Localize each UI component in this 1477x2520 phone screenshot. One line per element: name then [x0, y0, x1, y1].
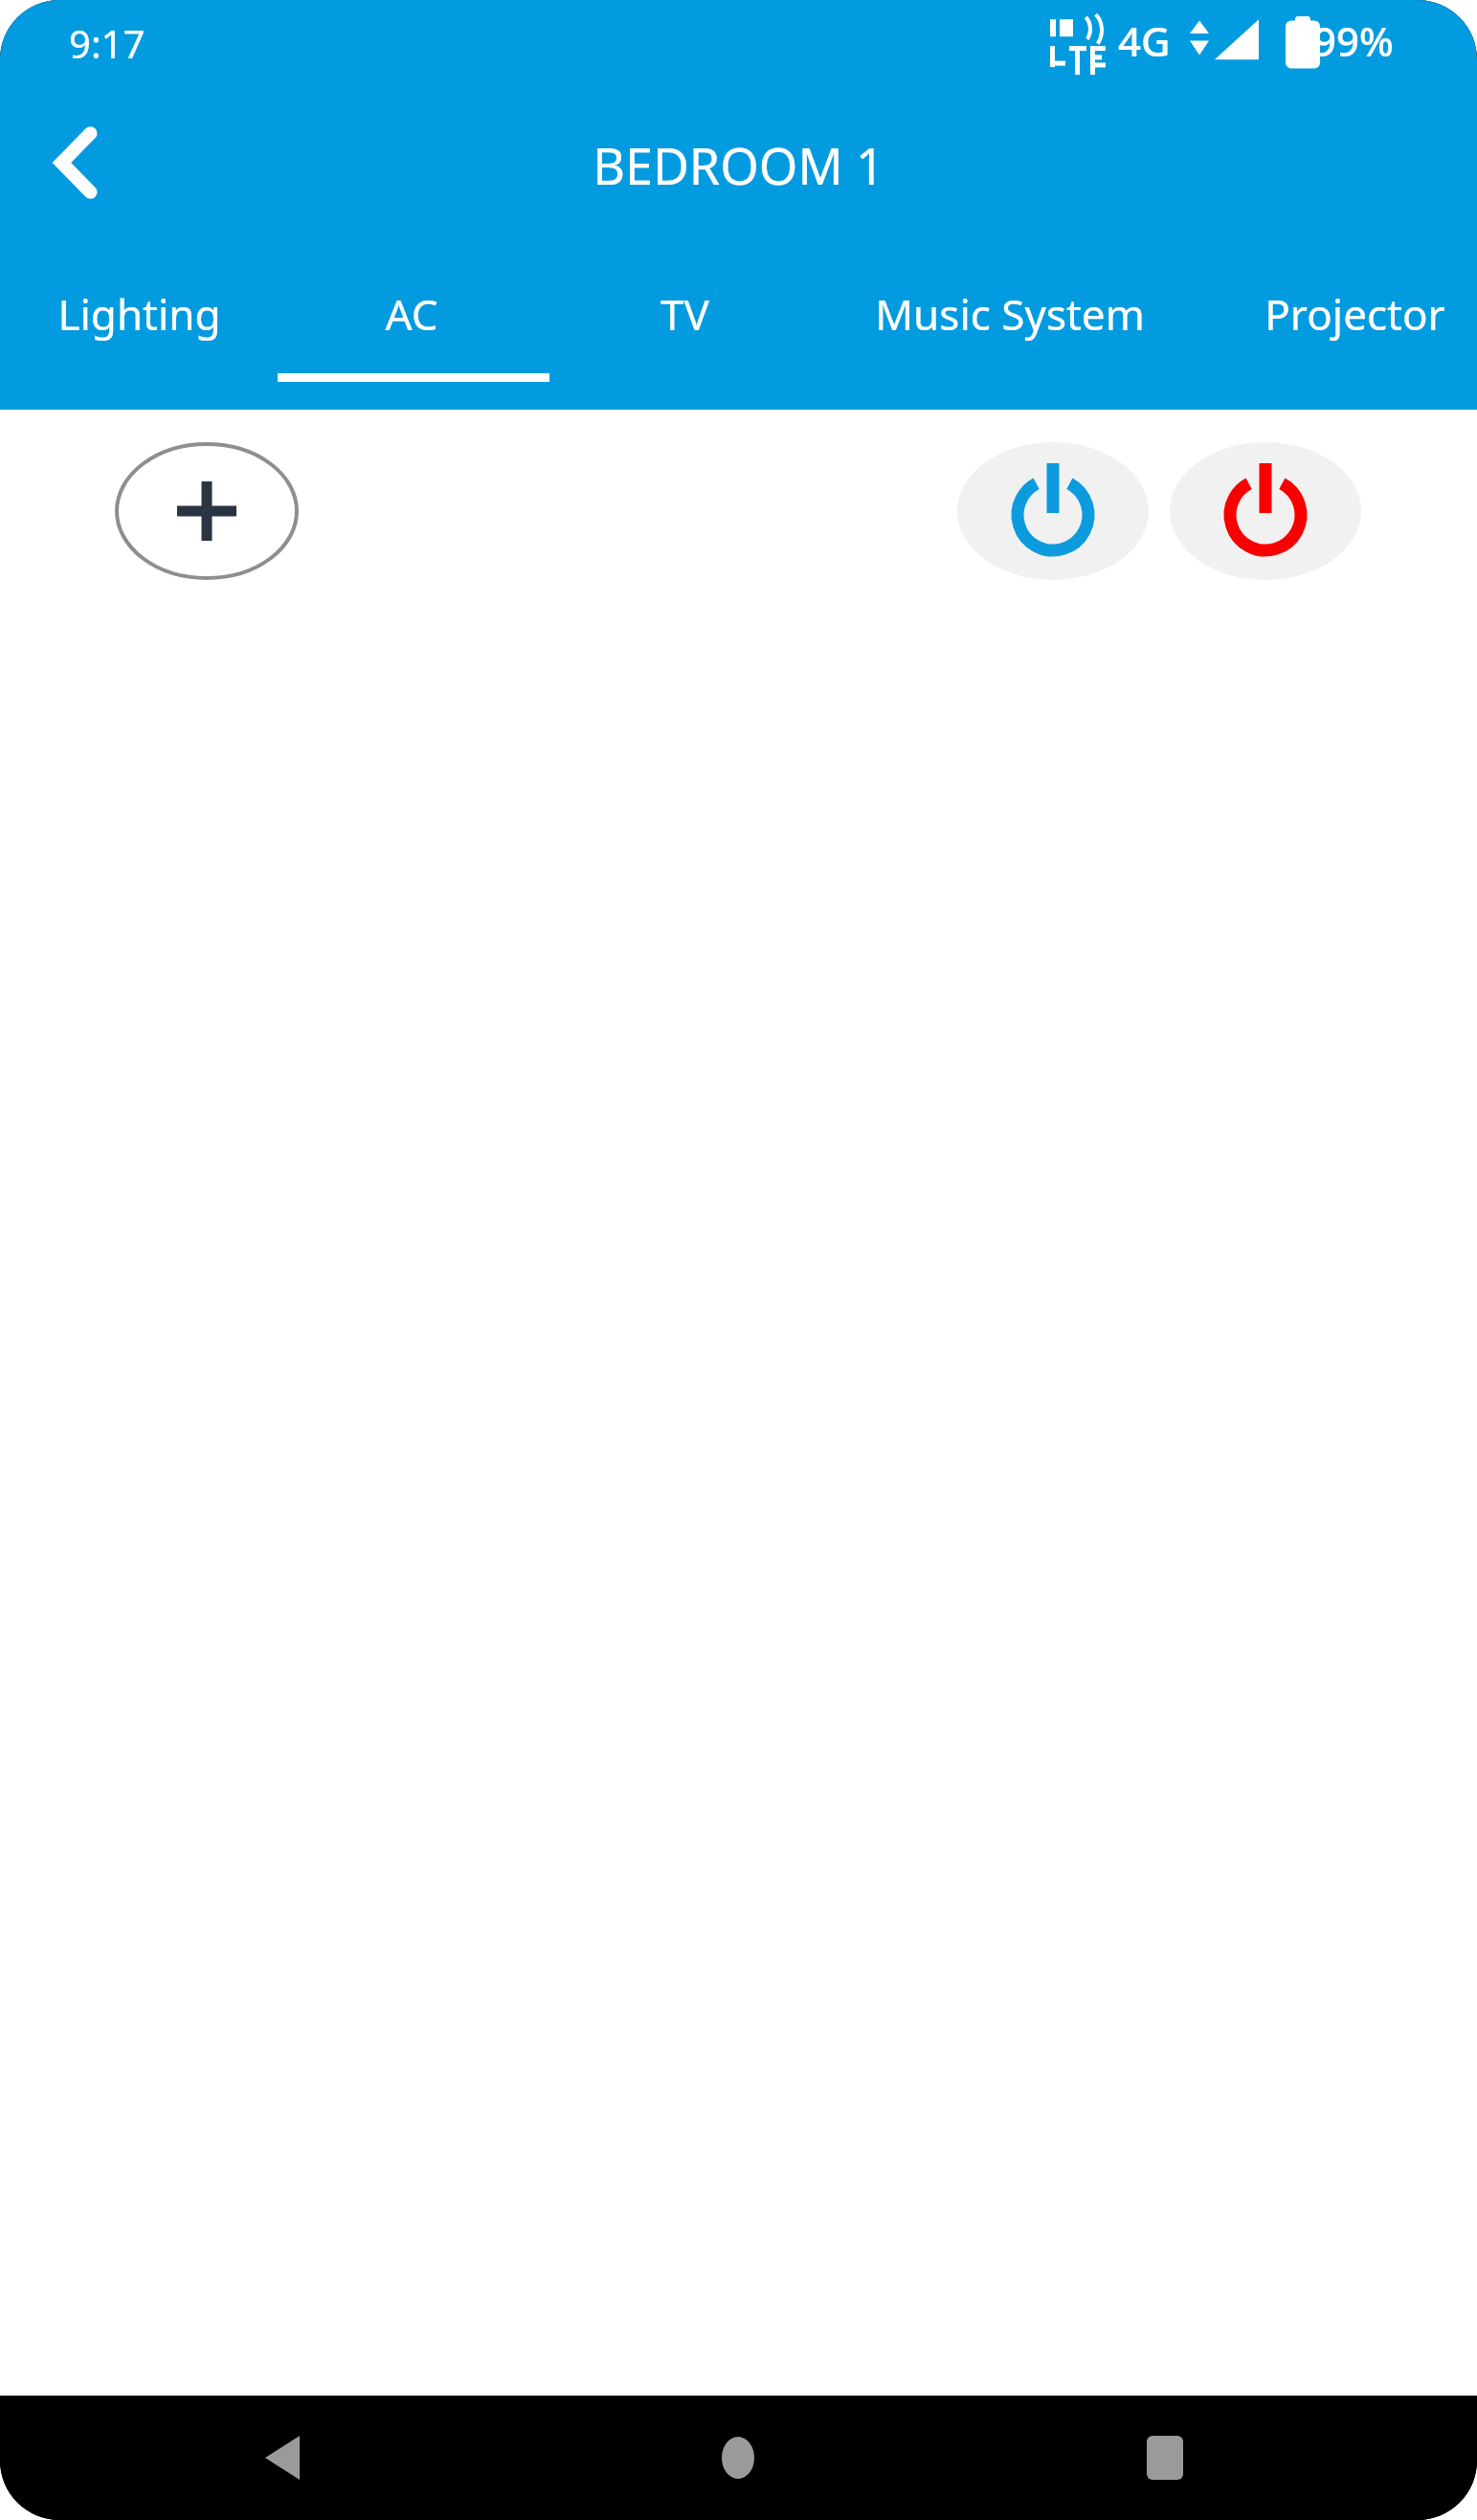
button[interactable]: Music System	[838, 256, 1182, 371]
button[interactable]: TV	[636, 256, 733, 371]
staticText: 9:17	[69, 17, 145, 69]
staticText: Projector	[1264, 285, 1445, 343]
button[interactable]: Add device	[115, 442, 299, 580]
button[interactable]: Back	[29, 115, 124, 211]
button[interactable]: Recent apps	[1122, 2415, 1208, 2501]
button[interactable]: Power off	[1170, 442, 1361, 580]
button[interactable]: Power on	[957, 442, 1149, 580]
staticText: 99%	[1313, 13, 1394, 68]
staticText: Lighting	[57, 285, 221, 343]
staticText: BEDROOM 1	[0, 131, 1477, 199]
button[interactable]: Projector	[1216, 256, 1477, 371]
button[interactable]: Lighting	[19, 256, 258, 371]
button[interactable]: Back	[239, 2415, 325, 2501]
button[interactable]: AC	[354, 256, 469, 371]
button[interactable]: Home	[695, 2415, 781, 2501]
staticText: TV	[660, 285, 709, 343]
staticText: AC	[385, 285, 438, 343]
staticText: 4G	[1118, 13, 1171, 68]
staticText: Music System	[875, 285, 1145, 343]
